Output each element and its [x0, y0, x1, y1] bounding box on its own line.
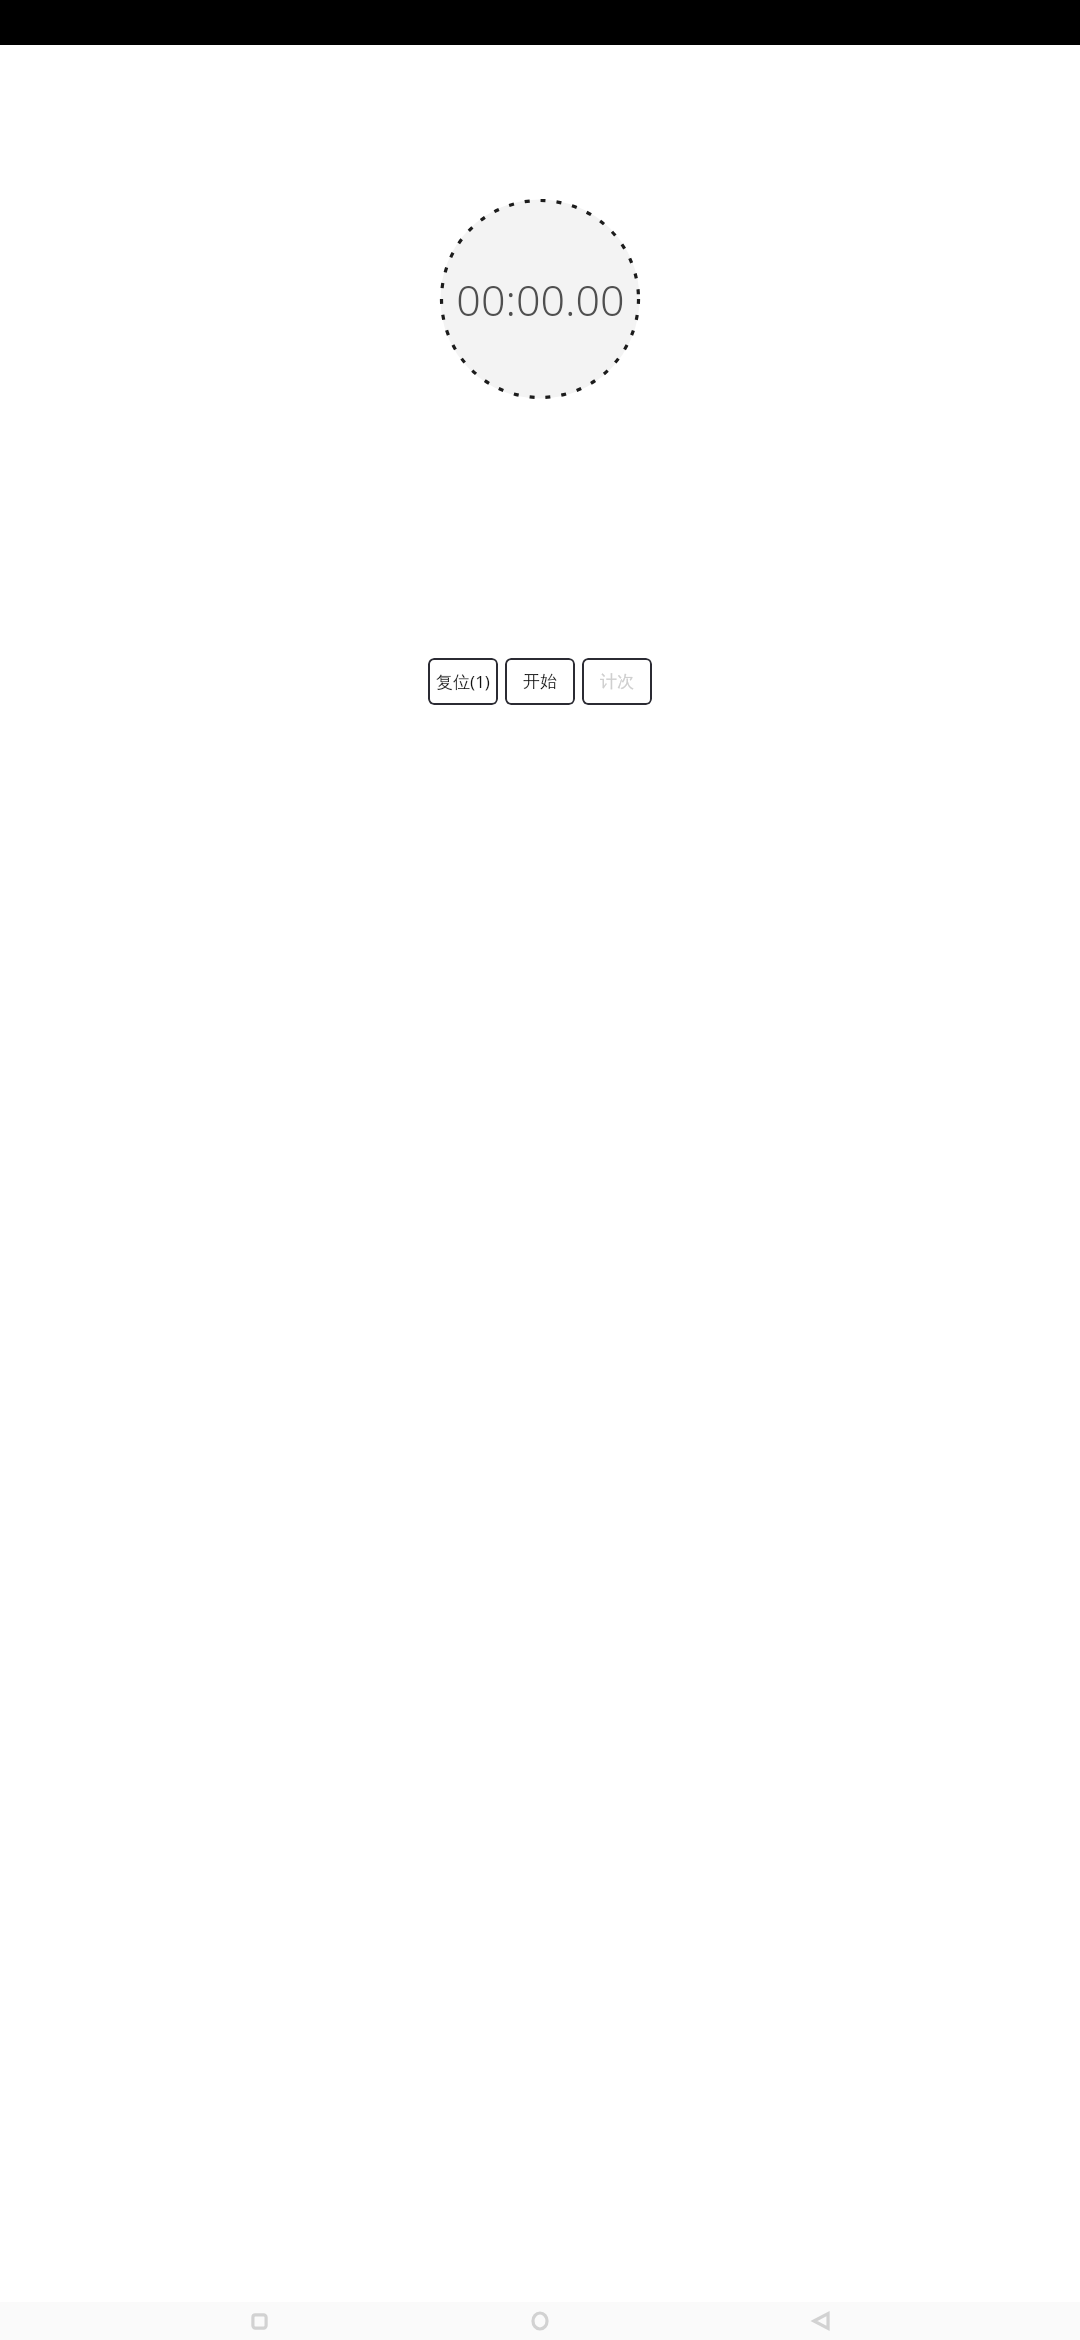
button[interactable]: Back — [799, 2302, 843, 2340]
staticText: 00:00.00 — [456, 270, 625, 329]
button[interactable]: 计次 — [582, 658, 652, 705]
button[interactable]: Recent apps — [237, 2302, 281, 2340]
staticText: 计次 — [600, 671, 634, 692]
staticText: 开始 — [523, 671, 557, 692]
button[interactable]: Home — [518, 2302, 562, 2340]
button[interactable]: 复位(1) — [428, 658, 498, 705]
button[interactable]: 开始 — [505, 658, 575, 705]
staticText: 复位(1) — [436, 670, 490, 693]
